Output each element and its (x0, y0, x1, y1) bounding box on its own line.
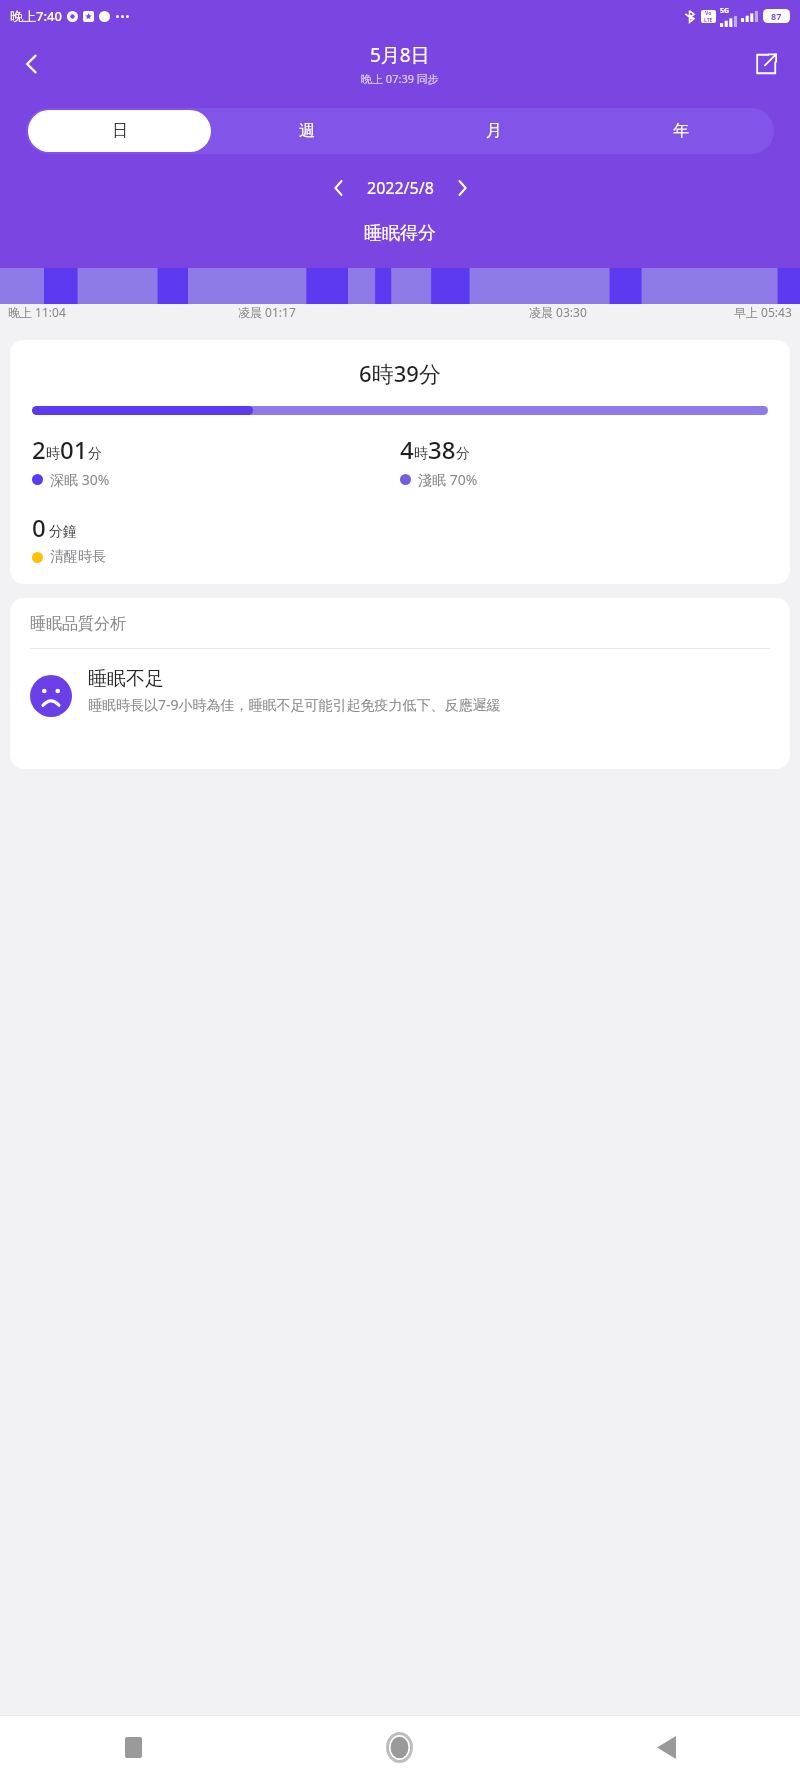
staticText: 5月8日 (370, 42, 430, 68)
staticText: 6時39分 (32, 358, 768, 388)
button[interactable]: 睡眠品質分析 (10, 598, 790, 769)
staticText: 分鐘 (49, 523, 77, 541)
staticText: 晚上 07:39 同步 (361, 71, 439, 86)
staticText: 週 (299, 121, 315, 141)
staticText: 清醒時長 (50, 548, 106, 566)
button[interactable]: Share (744, 42, 788, 86)
staticText: 分 (88, 445, 102, 463)
staticText: 淺眠 70% (418, 470, 478, 489)
button[interactable]: Back (8, 40, 56, 88)
button[interactable]: 月 (402, 110, 585, 152)
staticText: 睡眠時長以7-9小時為佳，睡眠不足可能引起免疫力低下、反應遲緩 (88, 695, 501, 714)
button[interactable]: 6時39分 (10, 340, 790, 584)
staticText: 凌晨 03:30 (529, 304, 587, 320)
staticText: 凌晨 01:17 (238, 304, 296, 320)
staticText: 4 (400, 433, 414, 466)
staticText: 睡眠不足 (88, 667, 164, 691)
button[interactable]: 年 (589, 110, 772, 152)
staticText: 睡眠品質分析 (30, 614, 126, 634)
staticText: 87 (771, 10, 782, 22)
button[interactable]: Recents (0, 1716, 266, 1778)
button[interactable]: Previous day (321, 170, 357, 206)
staticText: 38 (428, 433, 456, 466)
staticText: 2022/5/8 (367, 177, 434, 199)
staticText: 晚上 11:04 (8, 304, 66, 320)
staticText: 年 (673, 121, 689, 141)
button[interactable]: Back (533, 1716, 800, 1778)
staticText: 早上 05:43 (734, 304, 792, 320)
staticText: 01 (60, 433, 88, 466)
staticText: 深眠 30% (50, 470, 110, 489)
staticText: 日 (112, 121, 128, 141)
staticText: LTE (704, 17, 713, 23)
button[interactable]: Next day (444, 170, 480, 206)
staticText: 時 (46, 445, 60, 463)
staticText: 睡眠得分 (364, 222, 436, 245)
staticText: Vo (705, 10, 712, 17)
staticText: 2 (32, 433, 46, 466)
staticText: 0 (32, 511, 46, 544)
staticText: 5G (720, 6, 730, 16)
staticText: 晚上7:40 (10, 7, 62, 25)
staticText: 時 (414, 445, 428, 463)
staticText: 月 (486, 121, 502, 141)
button[interactable]: 週 (215, 110, 398, 152)
button[interactable]: Home (266, 1716, 533, 1778)
button[interactable]: 日 (28, 110, 211, 152)
staticText: 分 (456, 445, 470, 463)
